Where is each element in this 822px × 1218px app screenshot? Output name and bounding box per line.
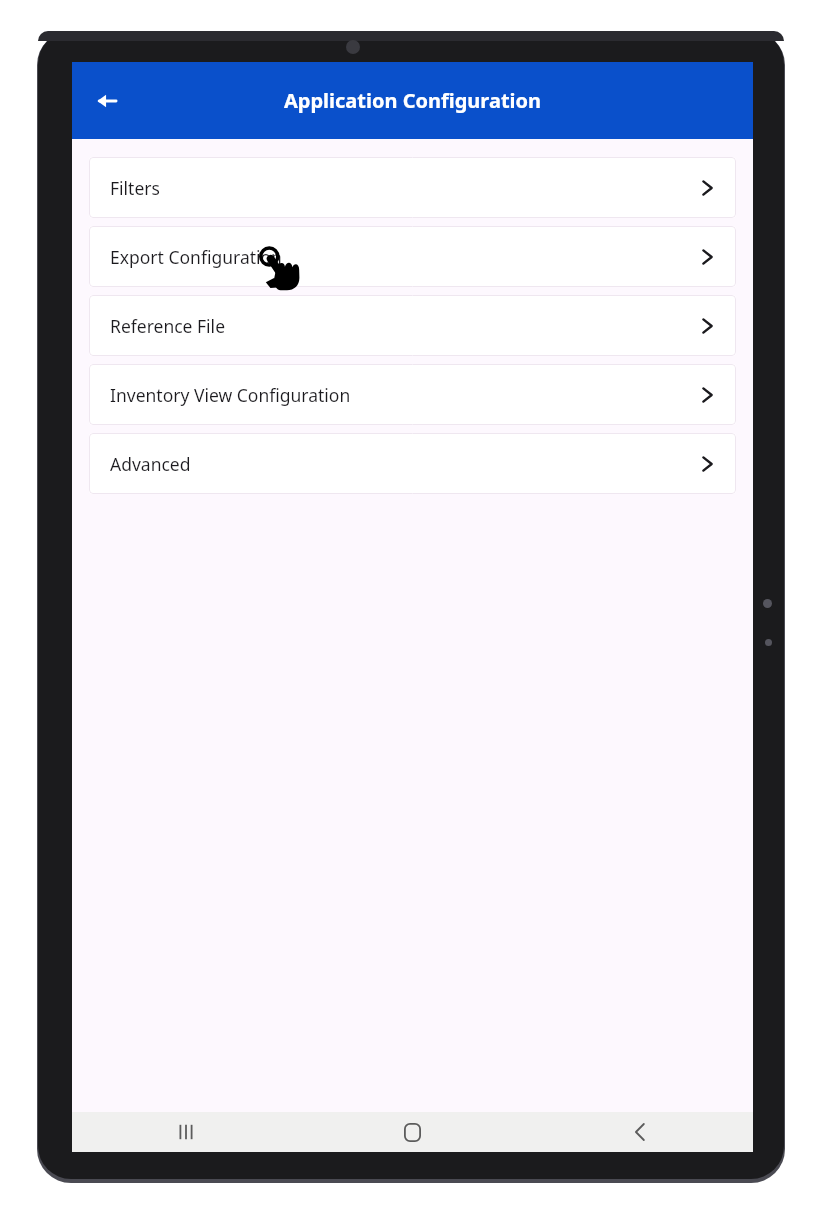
staticText: Application Configuration bbox=[72, 87, 753, 114]
button[interactable]: Back bbox=[526, 1112, 753, 1152]
button[interactable]: Back bbox=[79, 73, 135, 129]
button[interactable]: Recent apps bbox=[72, 1112, 299, 1152]
staticText: Reference File bbox=[110, 314, 226, 338]
button[interactable]: Home bbox=[299, 1112, 526, 1152]
staticText: Advanced bbox=[110, 452, 191, 476]
button[interactable]: Filters bbox=[89, 157, 736, 218]
staticText: Inventory View Configuration bbox=[110, 383, 351, 407]
button[interactable]: Advanced bbox=[89, 433, 736, 494]
staticText: Filters bbox=[110, 176, 160, 200]
button[interactable]: Reference File bbox=[89, 295, 736, 356]
button[interactable]: Inventory View Configuration bbox=[89, 364, 736, 425]
button[interactable]: Export Configuration bbox=[89, 226, 736, 287]
staticText: Export Configuration bbox=[110, 245, 282, 269]
